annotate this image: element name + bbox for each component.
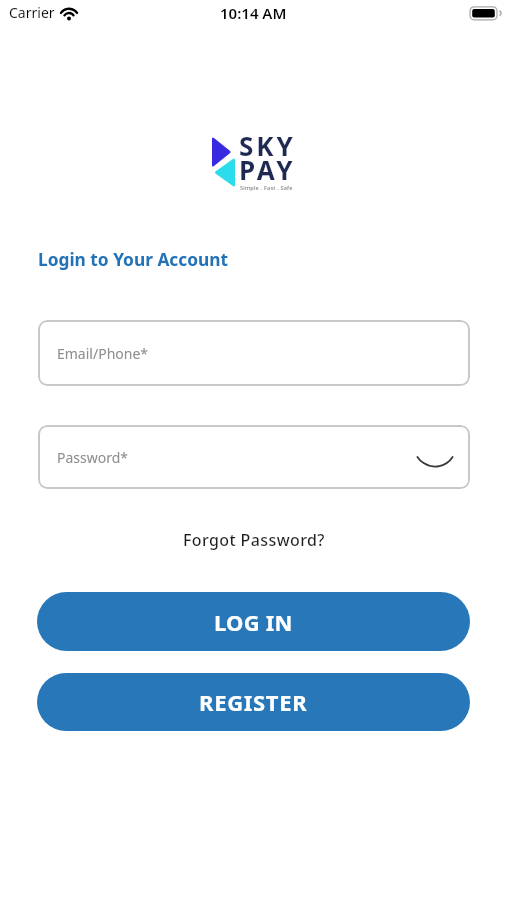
button[interactable]: LOG IN bbox=[37, 592, 470, 651]
button[interactable]: Password* bbox=[38, 425, 470, 489]
staticText: Simple . Fast . Safe bbox=[240, 184, 293, 191]
button[interactable]: Email/Phone* bbox=[38, 320, 470, 386]
staticText: PAY bbox=[239, 152, 296, 187]
staticText: SKY bbox=[239, 128, 296, 163]
staticText: Login to Your Account bbox=[38, 248, 229, 272]
staticText: Carrier bbox=[9, 3, 55, 22]
staticText: LOG IN bbox=[214, 607, 293, 637]
staticText: Forgot Password? bbox=[183, 529, 325, 551]
staticText: REGISTER bbox=[199, 687, 308, 717]
staticText: 10:14 AM bbox=[220, 3, 287, 23]
button[interactable]: Forgot Password? bbox=[183, 529, 325, 551]
button[interactable]: REGISTER bbox=[37, 673, 470, 731]
staticText: Password* bbox=[57, 448, 129, 467]
staticText: Email/Phone* bbox=[57, 344, 149, 363]
